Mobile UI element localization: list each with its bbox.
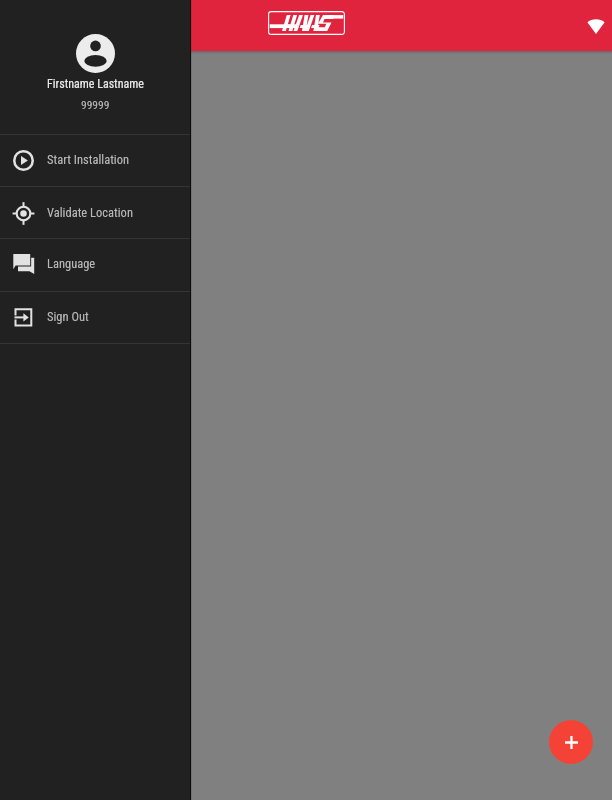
button[interactable]: Sign Out xyxy=(0,291,190,344)
button[interactable]: Validate Location xyxy=(0,187,190,240)
staticText: Validate Location xyxy=(47,205,133,220)
staticText: 99999 xyxy=(81,98,110,111)
staticText: Language xyxy=(47,256,96,271)
button[interactable]: Wifi status xyxy=(576,6,612,46)
button[interactable]: Language xyxy=(0,238,190,291)
staticText: Firstname Lastname xyxy=(47,77,144,91)
button[interactable]: Add xyxy=(549,720,593,764)
button[interactable]: Start Installation xyxy=(0,134,190,187)
staticText: Sign Out xyxy=(47,309,89,324)
staticText: Start Installation xyxy=(47,152,130,167)
